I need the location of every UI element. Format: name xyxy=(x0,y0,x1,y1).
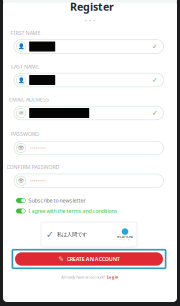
button[interactable]: ✎ xyxy=(12,250,166,268)
staticText: ✓ xyxy=(152,43,158,50)
button[interactable]: I agree with the terms and conditions xyxy=(16,207,126,214)
staticText: Register xyxy=(70,0,114,14)
staticText: 私は人間です xyxy=(57,231,87,238)
staticText: Subscribe to newsletter xyxy=(29,197,86,204)
button[interactable]: ✓ xyxy=(41,222,137,247)
staticText: Login xyxy=(107,274,119,280)
staticText: ✎ xyxy=(58,255,64,263)
staticText: EMAIL ADDRESS xyxy=(9,96,49,103)
staticText: ✉ xyxy=(19,110,23,116)
staticText: 👤 xyxy=(18,43,25,50)
staticText: 👤 xyxy=(18,77,25,83)
staticText: 👁 xyxy=(18,145,25,151)
staticText: 👁 xyxy=(18,178,25,184)
button[interactable]: Login xyxy=(107,274,119,280)
button[interactable]: 👤 xyxy=(14,73,163,87)
button[interactable]: 👤 xyxy=(14,40,163,53)
staticText: ✓ xyxy=(152,76,158,84)
button[interactable]: 👁 xyxy=(14,141,163,155)
staticText: •••••••• xyxy=(30,145,46,151)
button[interactable]: Subscribe to newsletter xyxy=(16,197,126,204)
staticText: PASSWORD xyxy=(11,130,39,138)
button[interactable]: ✉ xyxy=(14,106,163,120)
staticText: •••••••• xyxy=(30,178,46,183)
staticText: プライバシー･利用 xyxy=(120,239,129,241)
staticText: FIRST NAME xyxy=(10,29,40,37)
button[interactable]: 👁 xyxy=(14,174,163,188)
staticText: ✓ xyxy=(46,229,54,240)
staticText: Already have an account? xyxy=(61,274,105,280)
staticText: I agree with the terms and conditions xyxy=(29,207,118,215)
staticText: ✓ xyxy=(152,109,158,117)
staticText: LAST NAME xyxy=(11,63,39,70)
staticText: CONFIRM PASSWORD xyxy=(6,163,59,171)
staticText: CREATE AN ACCOUNT xyxy=(67,255,120,263)
staticText: reCAPTCHA xyxy=(117,235,133,239)
